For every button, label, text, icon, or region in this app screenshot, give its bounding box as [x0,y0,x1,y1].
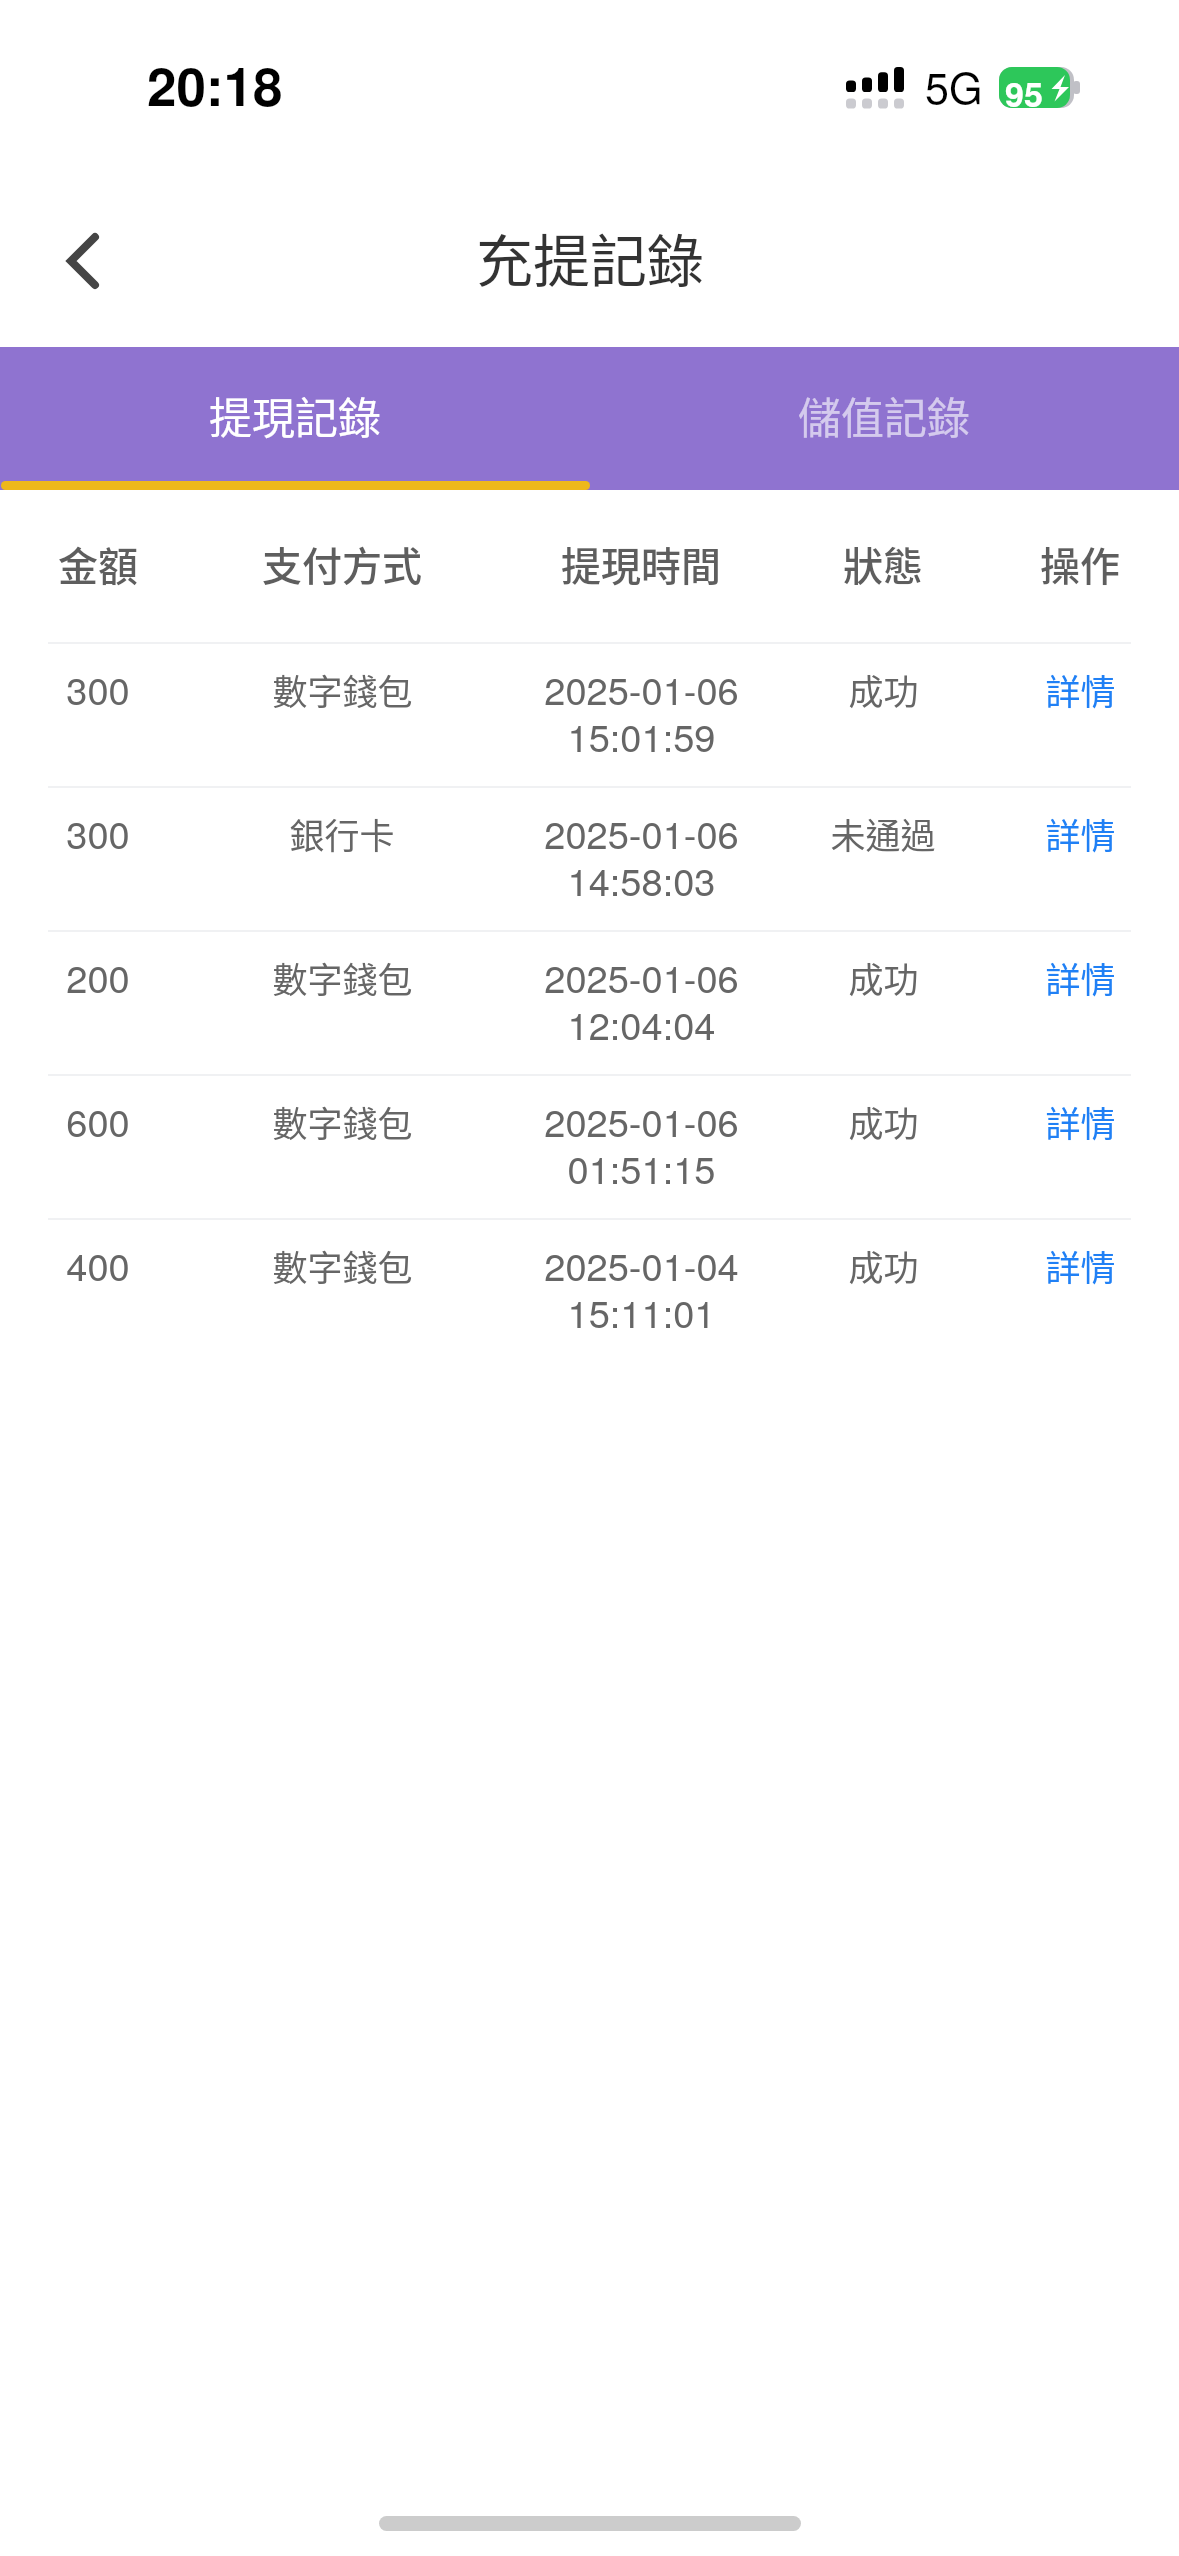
staticText: 成功 [848,1240,919,1291]
staticText: 5G [925,55,983,117]
staticText: 300 [66,805,130,859]
staticText: 提現時間 [561,535,721,593]
button[interactable]: 詳情 [1020,932,1140,1022]
button[interactable]: 詳情 [1020,1076,1140,1166]
staticText: 金額 [58,535,138,593]
button[interactable]: 詳情 [1020,644,1140,734]
staticText: 2025-01-06 01:51:15 [544,1093,739,1195]
staticText: 400 [66,1237,130,1291]
staticText: 成功 [848,952,919,1003]
staticText: 成功 [848,664,919,715]
staticText: 詳情 [1045,952,1116,1003]
staticText: 2025-01-06 14:58:03 [544,805,739,907]
staticText: 成功 [848,1096,919,1147]
staticText: 未通過 [830,808,936,859]
staticText: 200 [66,949,130,1003]
button[interactable]: 詳情 [1020,788,1140,878]
staticText: 詳情 [1045,808,1116,859]
button[interactable]: 儲值記錄 [589,347,1179,490]
staticText: 數字錢包 [272,1240,413,1291]
staticText: 詳情 [1045,664,1116,715]
staticText: 數字錢包 [272,664,413,715]
staticText: 95 [1005,69,1043,109]
staticText: 支付方式 [262,535,422,593]
staticText: 儲值記錄 [798,384,970,446]
staticText: 操作 [1040,535,1120,593]
staticText: 2025-01-06 15:01:59 [544,661,739,763]
staticText: 300 [66,661,130,715]
staticText: 銀行卡 [289,808,395,859]
staticText: 充提記錄 [476,216,704,299]
staticText: 詳情 [1045,1240,1116,1291]
staticText: 數字錢包 [272,1096,413,1147]
button[interactable]: 詳情 [1020,1220,1140,1310]
staticText: 600 [66,1093,130,1147]
staticText: 2025-01-06 12:04:04 [544,949,739,1051]
staticText: 提現記錄 [209,384,381,446]
staticText: 詳情 [1045,1096,1116,1147]
button[interactable]: Back [33,206,133,316]
staticText: 狀態 [843,535,923,593]
staticText: 數字錢包 [272,952,413,1003]
button[interactable]: 提現記錄 [0,347,589,490]
staticText: 20:18 [147,46,283,122]
staticText: 2025-01-04 15:11:01 [544,1237,739,1339]
